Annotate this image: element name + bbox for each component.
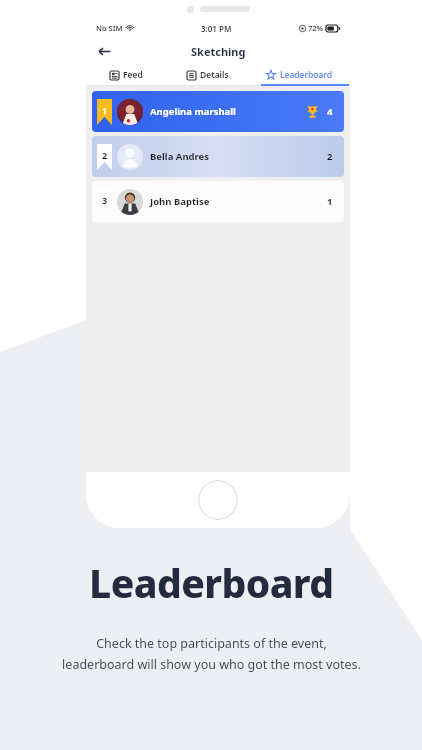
staticText: No SIM: [96, 23, 123, 33]
staticText: Angelina marshall: [150, 105, 236, 118]
staticText: Leaderboard: [89, 556, 334, 609]
button[interactable]: Home: [198, 480, 238, 520]
staticText: 4: [327, 105, 333, 118]
button[interactable]: Leaderboard: [248, 64, 350, 86]
staticText: Feed: [123, 69, 143, 81]
staticText: 2: [327, 150, 333, 163]
staticText: Sketching: [191, 44, 246, 59]
staticText: 3:01 PM: [201, 23, 232, 34]
staticText: Check the top participants of the event,…: [62, 635, 361, 672]
staticText: Details: [200, 69, 229, 81]
staticText: Leaderboard: [280, 69, 333, 81]
staticText: John Baptise: [150, 195, 210, 208]
staticText: 2: [102, 149, 108, 161]
staticText: 3: [102, 194, 108, 206]
button[interactable]: Back: [92, 39, 116, 63]
staticText: 72%: [308, 23, 324, 33]
button[interactable]: Details: [167, 64, 248, 86]
button[interactable]: 1: [92, 91, 344, 132]
staticText: 1: [327, 195, 333, 208]
button[interactable]: 2: [92, 136, 344, 177]
button[interactable]: Feed: [86, 64, 167, 86]
staticText: Bella Andres: [150, 150, 210, 163]
button[interactable]: 3: [92, 181, 344, 222]
staticText: 1: [102, 104, 108, 116]
